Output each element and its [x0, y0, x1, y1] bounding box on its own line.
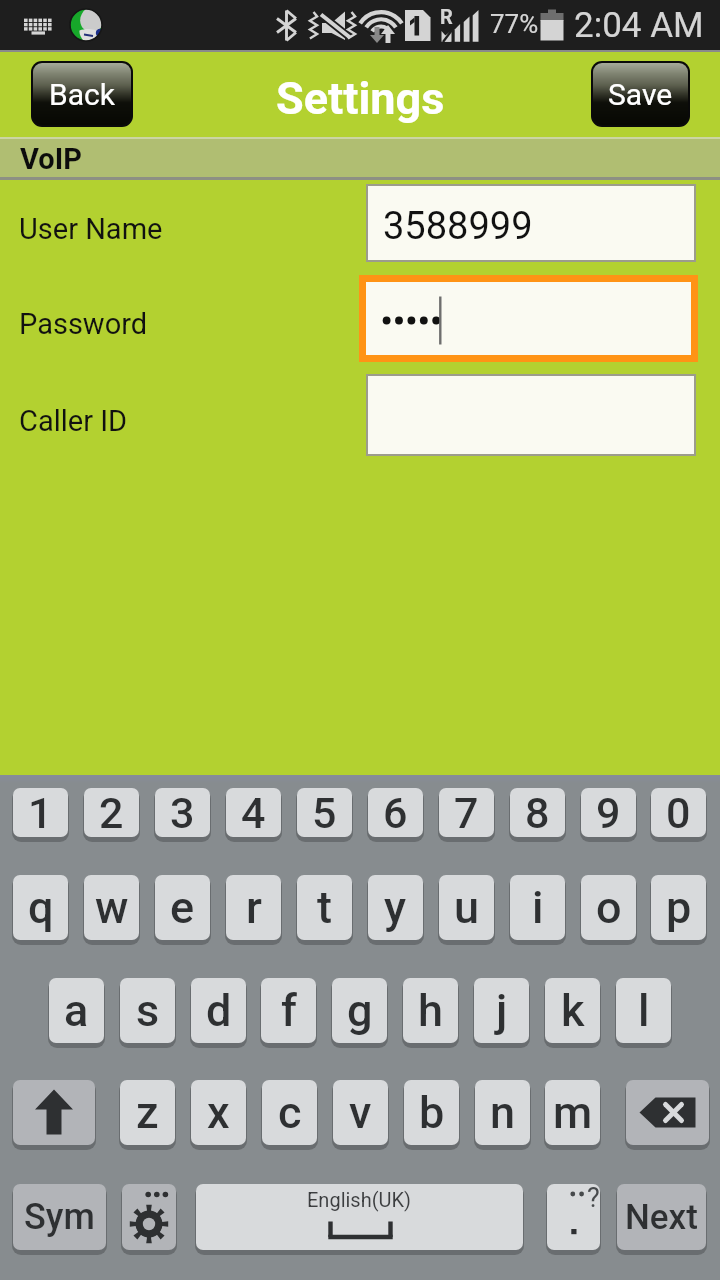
button[interactable]: b	[404, 1080, 459, 1145]
button[interactable]: s	[120, 978, 175, 1043]
button[interactable]: o	[581, 875, 636, 940]
button[interactable]: gear	[122, 1184, 176, 1250]
button[interactable]: 4	[226, 788, 281, 837]
staticText: Sym	[24, 1196, 95, 1238]
button[interactable]: l	[616, 978, 671, 1043]
staticText: i	[532, 881, 544, 934]
staticText: Save	[608, 77, 673, 112]
staticText: z	[136, 1086, 159, 1139]
button[interactable]: z	[120, 1080, 175, 1145]
staticText: VoIP	[20, 142, 82, 176]
button[interactable]: f	[261, 978, 316, 1043]
staticText: v	[349, 1086, 372, 1139]
staticText: Password	[19, 307, 148, 341]
staticText: 1	[28, 788, 53, 837]
button[interactable]: d	[191, 978, 246, 1043]
staticText: Caller ID	[19, 404, 128, 438]
button[interactable]: 3588999	[368, 186, 694, 260]
button[interactable]: 7	[439, 788, 494, 837]
button[interactable]: c	[262, 1080, 317, 1145]
button[interactable]: j	[474, 978, 529, 1043]
button[interactable]: x	[191, 1080, 246, 1145]
staticText: h	[418, 984, 444, 1037]
staticText: User Name	[19, 212, 163, 246]
staticText: u	[454, 881, 480, 934]
staticText: s	[136, 984, 160, 1037]
staticText: 0	[666, 788, 691, 837]
staticText: 8	[525, 788, 550, 837]
button[interactable]: n	[475, 1080, 530, 1145]
staticText: a	[64, 984, 89, 1037]
button[interactable]: i	[510, 875, 565, 940]
staticText: 2:04 AM	[574, 5, 704, 46]
button[interactable]: period	[547, 1184, 600, 1250]
button[interactable]: Back	[33, 63, 131, 125]
staticText: p	[666, 881, 692, 934]
staticText: q	[28, 881, 54, 934]
button[interactable]: r	[226, 875, 281, 940]
button[interactable]: u	[439, 875, 494, 940]
button[interactable]: 1	[13, 788, 68, 837]
button[interactable]: v	[333, 1080, 388, 1145]
button[interactable]: h	[403, 978, 458, 1043]
button[interactable]: k	[545, 978, 600, 1043]
button[interactable]: backspace	[626, 1080, 709, 1145]
staticText: 6	[383, 788, 408, 837]
staticText: 4	[241, 788, 266, 837]
staticText: 3	[170, 788, 195, 837]
button[interactable]: m	[545, 1080, 600, 1145]
button[interactable]: p	[651, 875, 706, 940]
staticText: w	[95, 881, 129, 934]
button[interactable]: 8	[510, 788, 565, 837]
button[interactable]: 6	[368, 788, 423, 837]
staticText: j	[496, 984, 508, 1037]
button[interactable]: Save	[593, 63, 688, 125]
staticText: g	[347, 984, 373, 1037]
staticText: Back	[49, 77, 115, 112]
staticText: Next	[625, 1197, 698, 1238]
button[interactable]: g	[332, 978, 387, 1043]
button[interactable]: Sym	[13, 1184, 106, 1250]
button[interactable]	[366, 282, 691, 355]
staticText: Settings	[276, 72, 445, 125]
button[interactable]: e	[155, 875, 210, 940]
staticText: 5	[312, 788, 337, 837]
staticText: y	[384, 881, 407, 934]
button[interactable]: q	[13, 875, 68, 940]
staticText: English(UK)	[307, 1188, 412, 1211]
button[interactable]: 0	[651, 788, 706, 837]
button[interactable]: 2	[84, 788, 139, 837]
staticText: l	[638, 984, 650, 1037]
staticText: b	[419, 1086, 445, 1139]
staticText: r	[246, 881, 262, 934]
staticText: 9	[596, 788, 621, 837]
staticText: 77%	[490, 9, 539, 39]
button[interactable]: shift	[13, 1080, 95, 1145]
button[interactable]: Next	[617, 1184, 706, 1250]
staticText: 3588999	[383, 204, 533, 249]
staticText: ?	[587, 1184, 600, 1214]
staticText: 7	[454, 788, 479, 837]
staticText: d	[206, 984, 232, 1037]
staticText: o	[596, 881, 622, 934]
staticText: x	[207, 1086, 230, 1139]
button[interactable]: 9	[581, 788, 636, 837]
staticText: n	[490, 1086, 516, 1139]
staticText: 2	[99, 788, 124, 837]
button[interactable]: w	[84, 875, 139, 940]
staticText: e	[170, 881, 195, 934]
button[interactable]: 3	[155, 788, 210, 837]
staticText: f	[281, 984, 297, 1037]
button[interactable]: space	[196, 1184, 523, 1250]
staticText: t	[317, 881, 332, 934]
button[interactable]: a	[49, 978, 104, 1043]
button[interactable]: 5	[297, 788, 352, 837]
staticText: k	[561, 984, 585, 1037]
staticText: R	[440, 5, 453, 28]
staticText: m	[553, 1086, 593, 1139]
button[interactable]: y	[368, 875, 423, 940]
button[interactable]: t	[297, 875, 352, 940]
staticText: c	[278, 1086, 302, 1139]
